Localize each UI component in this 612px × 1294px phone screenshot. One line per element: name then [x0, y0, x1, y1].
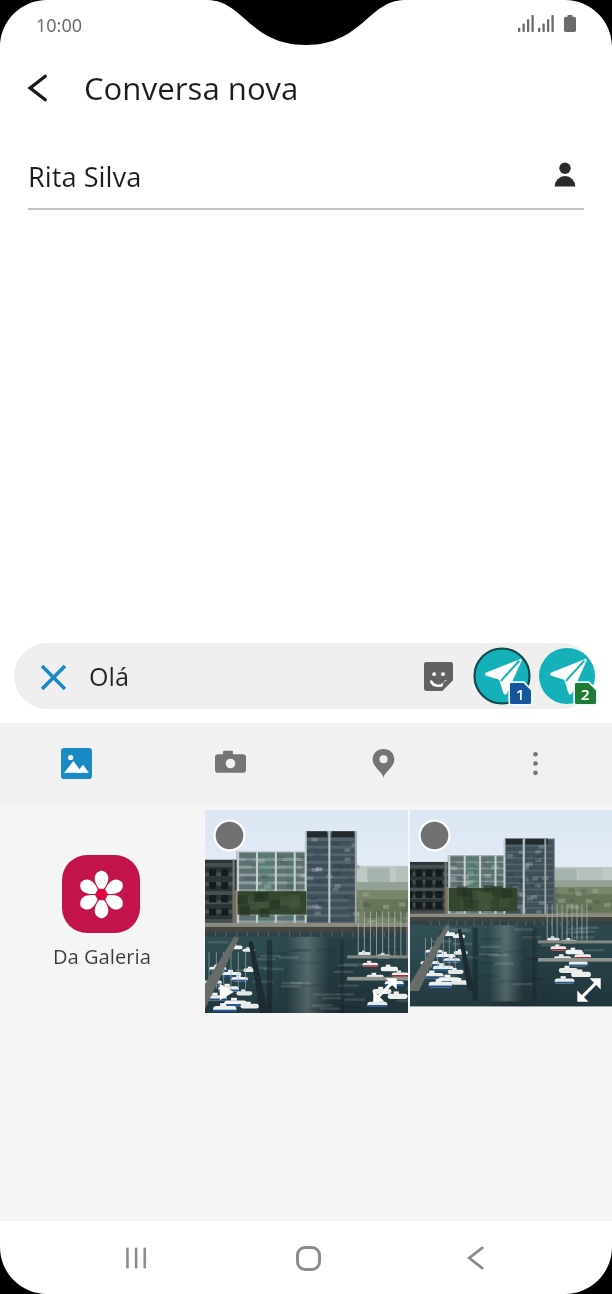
staticText: Da Galeria	[53, 943, 151, 970]
button[interactable]: Open contacts	[541, 151, 589, 199]
button[interactable]: Select photo	[418, 819, 451, 852]
button[interactable]: Home	[276, 1226, 340, 1290]
button[interactable]: Back	[444, 1226, 508, 1290]
button[interactable]: Da Galeria	[0, 810, 205, 1013]
button[interactable]: Camera	[200, 733, 260, 793]
staticText: 10:00	[36, 13, 83, 38]
staticText: Conversa nova	[84, 67, 299, 109]
button[interactable]: Rita Silva	[28, 130, 584, 208]
button[interactable]: Photo	[410, 810, 612, 1013]
button[interactable]: Expand photo	[576, 977, 602, 1003]
button[interactable]: Select photo	[213, 819, 246, 852]
staticText: Olá	[89, 659, 130, 693]
button[interactable]: Clear	[29, 653, 77, 701]
button[interactable]: Play video	[215, 981, 237, 1003]
staticText: Rita Silva	[28, 158, 142, 195]
button[interactable]: Gallery	[46, 733, 106, 793]
button[interactable]: Location	[353, 733, 413, 793]
button[interactable]: More options	[505, 733, 565, 793]
button[interactable]: Back	[10, 60, 66, 116]
button[interactable]: Stickers	[414, 652, 462, 700]
staticText: 2	[581, 684, 590, 704]
button[interactable]: Olá	[14, 643, 595, 709]
button[interactable]: Recent apps	[104, 1226, 168, 1290]
button[interactable]: Expand photo	[372, 977, 398, 1003]
button[interactable]: Photo	[205, 810, 408, 1013]
staticText: 1	[516, 684, 525, 704]
button[interactable]: Send with SIM 1	[473, 647, 531, 705]
button[interactable]: Send with SIM 2	[538, 647, 596, 705]
